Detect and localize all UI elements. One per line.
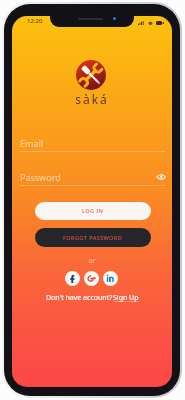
staticText: LOG IN xyxy=(82,207,104,215)
button[interactable]: Sign in with Google xyxy=(84,271,99,286)
staticText: 12:20 xyxy=(27,17,43,25)
button[interactable]: LOG IN xyxy=(35,202,151,220)
staticText: or xyxy=(12,256,172,266)
button[interactable]: Password xyxy=(20,171,166,186)
staticText: Sign Up xyxy=(113,293,139,303)
staticText: Email xyxy=(20,137,166,149)
staticText: Don't have account? xyxy=(46,293,113,303)
staticText: sàká xyxy=(12,91,172,107)
staticText: FORGOT PASSWORD xyxy=(63,234,123,242)
button[interactable]: FORGOT PASSWORD xyxy=(35,228,151,247)
staticText: Password xyxy=(20,171,156,183)
other: Show password xyxy=(156,174,166,180)
button[interactable]: Sign in with Facebook xyxy=(65,271,80,286)
button[interactable]: Sign in with LinkedIn xyxy=(103,271,118,286)
button[interactable]: Sign Up xyxy=(113,293,139,303)
button[interactable]: Email xyxy=(20,137,166,152)
